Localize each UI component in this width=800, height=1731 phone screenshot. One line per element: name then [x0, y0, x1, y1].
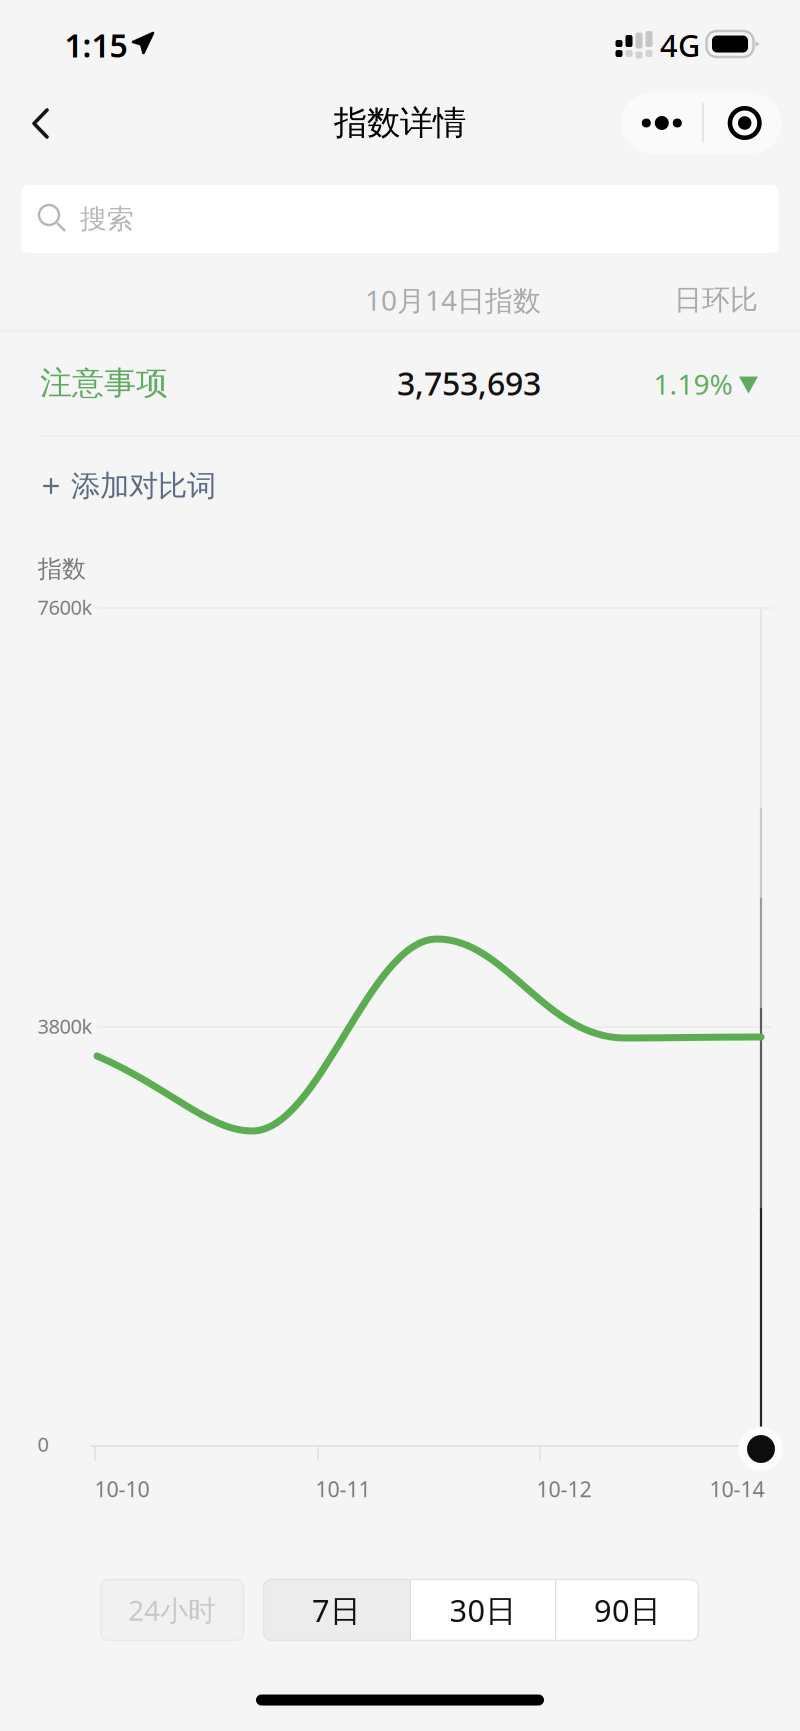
staticText: 3,753,693 [397, 362, 541, 404]
staticText: 1.19% [653, 365, 732, 403]
staticText: 1:15 [64, 24, 127, 66]
staticText: 90日 [594, 1590, 661, 1630]
button[interactable]: Close mini program [704, 92, 782, 153]
staticText: 10-14 [709, 1475, 764, 1503]
staticText: 4G [660, 25, 700, 65]
staticText: 日环比 [674, 283, 758, 317]
button[interactable]: 90日 [556, 1579, 698, 1640]
staticText: 7日 [312, 1590, 361, 1630]
button[interactable]: Back [6, 87, 74, 159]
staticText: 指数详情 [334, 102, 466, 143]
staticText: 10月14日指数 [365, 281, 541, 319]
button[interactable]: 24小时 [101, 1579, 244, 1640]
button[interactable]: 7日 [264, 1579, 410, 1640]
button[interactable]: 添加对比词 [44, 448, 244, 524]
staticText: 添加对比词 [71, 468, 216, 504]
button[interactable]: 搜索 [21, 185, 779, 253]
staticText: 搜索 [80, 203, 134, 235]
staticText: 7600k [37, 594, 92, 620]
staticText: 3800k [37, 1013, 92, 1039]
staticText: 指数 [38, 554, 86, 584]
staticText: 注意事项 [40, 363, 168, 403]
button[interactable]: More options [621, 92, 702, 153]
staticText: 10-12 [536, 1475, 591, 1503]
staticText: 24小时 [128, 1591, 216, 1629]
staticText: 30日 [449, 1590, 516, 1630]
staticText: 10-10 [94, 1475, 149, 1503]
staticText: 10-11 [315, 1475, 370, 1503]
button[interactable]: 30日 [411, 1579, 555, 1640]
staticText: 0 [37, 1431, 48, 1457]
